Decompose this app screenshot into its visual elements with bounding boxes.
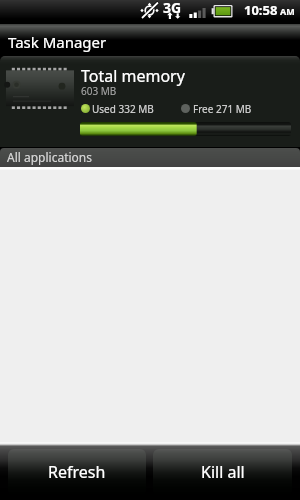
staticText: Total memory <box>81 65 185 87</box>
staticText: 603 MB <box>81 84 117 98</box>
staticText: All applications <box>7 149 93 165</box>
staticText: Task Manager <box>8 32 107 52</box>
staticText: 3G <box>163 0 182 17</box>
button[interactable] <box>0 24 300 40</box>
button[interactable]: Kill all <box>153 449 292 495</box>
staticText: Used 332 MB <box>92 102 154 116</box>
staticText: Free 271 MB <box>193 102 252 116</box>
staticText: Kill all <box>201 461 245 483</box>
staticText: 10:58 <box>244 1 278 19</box>
staticText: Refresh <box>48 461 106 483</box>
staticText: AM <box>280 5 295 17</box>
button[interactable]: Refresh <box>8 449 146 495</box>
